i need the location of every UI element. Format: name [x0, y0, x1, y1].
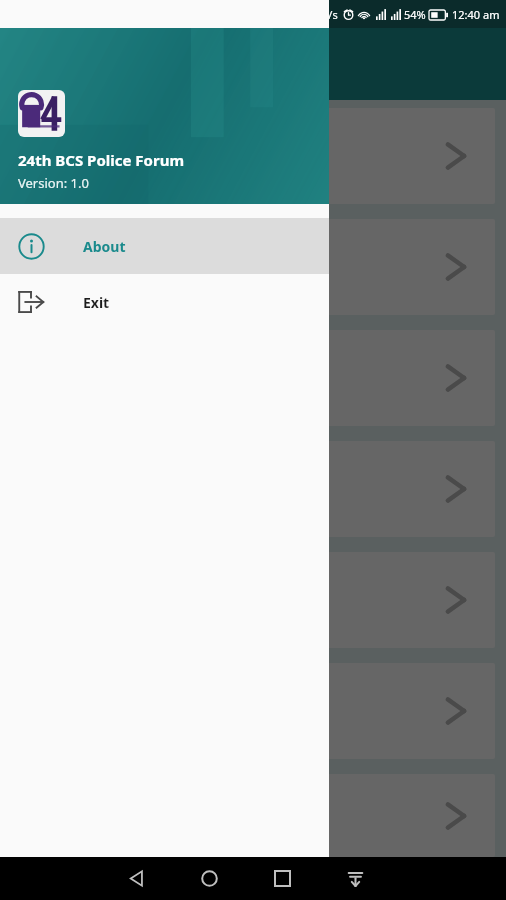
button[interactable]: Home: [173, 857, 245, 900]
staticText: Version: 1.0: [18, 174, 89, 192]
button[interactable]: Back: [100, 857, 172, 900]
button[interactable]: Hide navigation bar: [319, 857, 391, 900]
button[interactable]: [11, 663, 495, 759]
button[interactable]: About: [0, 218, 329, 274]
button[interactable]: Exit: [0, 274, 329, 330]
staticText: 24th BCS Police Forum: [18, 150, 185, 170]
staticText: About: [83, 237, 126, 256]
staticText: Exit: [83, 293, 110, 312]
button[interactable]: [11, 552, 495, 648]
staticText: 12:40 am: [452, 7, 500, 22]
button[interactable]: [11, 108, 495, 204]
button[interactable]: [11, 219, 495, 315]
button[interactable]: [11, 330, 495, 426]
staticText: 3.3K/s: [306, 7, 338, 22]
button[interactable]: Recent apps: [246, 857, 318, 900]
staticText: 54%: [404, 7, 426, 22]
button[interactable]: [11, 774, 495, 857]
button[interactable]: [11, 441, 495, 537]
